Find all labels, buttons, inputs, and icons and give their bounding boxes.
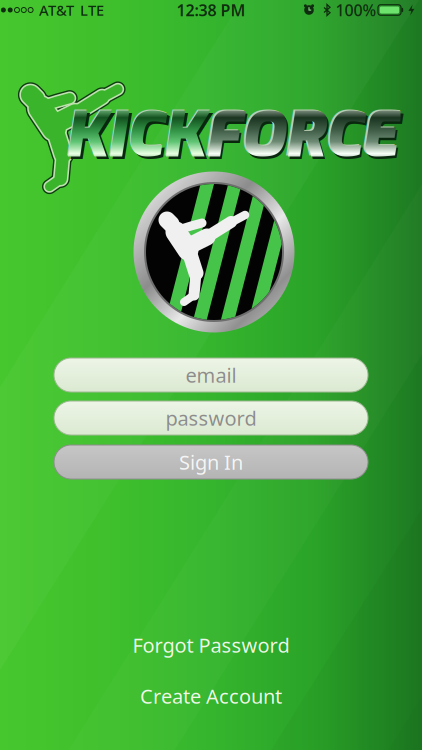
staticText: Sign In <box>179 449 243 475</box>
staticText: password <box>165 405 256 431</box>
staticText: KICKFORCE <box>67 96 400 179</box>
staticText: Create Account <box>140 683 282 709</box>
staticText: LTE <box>80 0 104 20</box>
staticText: KICKFORCE <box>63 93 396 176</box>
button[interactable]: Create Account <box>81 678 341 714</box>
button[interactable]: password <box>54 401 368 435</box>
button[interactable]: Sign In <box>54 445 368 479</box>
staticText: 100% <box>335 0 376 21</box>
button[interactable]: email <box>54 358 368 392</box>
staticText: 12:38 PM <box>176 0 245 21</box>
button[interactable]: Forgot Password <box>81 627 341 663</box>
staticText: AT&T <box>39 0 74 20</box>
staticText: Forgot Password <box>132 632 289 658</box>
staticText: email <box>185 362 236 388</box>
